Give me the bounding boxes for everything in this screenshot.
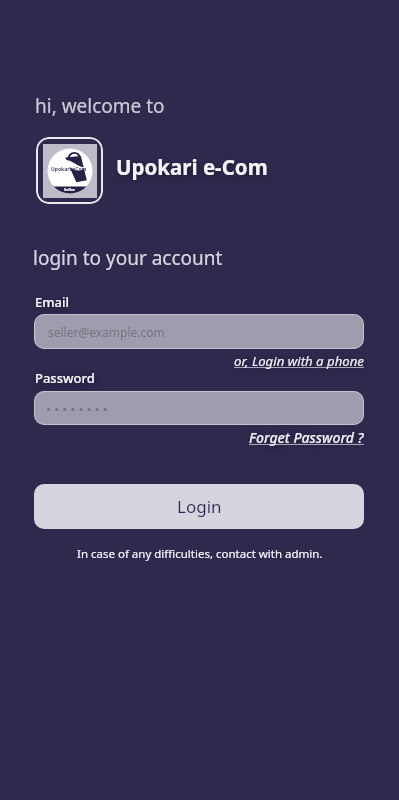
button[interactable]: Login <box>34 484 364 529</box>
staticText: login to your account <box>33 245 223 271</box>
button[interactable]: seller@example.com <box>34 314 364 349</box>
button[interactable]: Forget Password ? <box>249 428 364 447</box>
staticText: Upokari e-Com <box>116 153 268 181</box>
staticText: Email <box>35 293 70 311</box>
staticText: Upokari eCom <box>51 166 87 173</box>
button[interactable]: or, Login with a phone <box>234 352 364 370</box>
staticText: hi, welcome to <box>35 93 165 119</box>
staticText: In case of any difficulties, contact wit… <box>77 546 323 562</box>
staticText: Seller <box>64 187 76 192</box>
staticText: Login <box>177 495 222 518</box>
staticText: seller@example.com <box>48 324 165 340</box>
staticText: Password <box>35 369 95 387</box>
button[interactable] <box>34 391 364 425</box>
